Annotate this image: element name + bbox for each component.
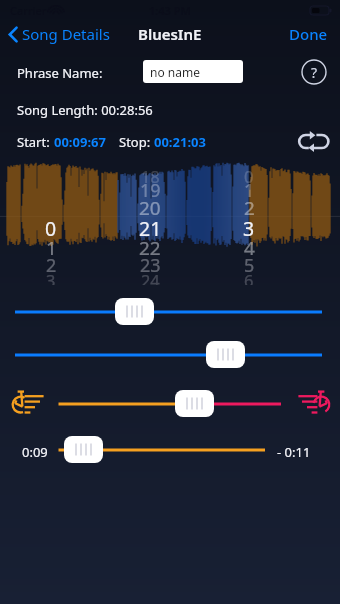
staticText: 6 <box>244 269 254 285</box>
staticText: 1 <box>244 178 255 202</box>
staticText: 19 <box>140 178 161 202</box>
staticText: 24 <box>141 269 160 285</box>
staticText: 21 <box>139 215 162 239</box>
staticText: 0:09 <box>22 443 48 461</box>
staticText: 0 <box>45 215 57 239</box>
staticText: 3 <box>243 215 255 239</box>
staticText: 23 <box>140 253 161 277</box>
staticText: 4 <box>47 282 56 285</box>
staticText: 5 <box>244 253 255 277</box>
staticText: ? <box>311 63 318 82</box>
staticText: 25 <box>142 282 159 285</box>
staticText: 22 <box>139 235 161 259</box>
button[interactable]: Loop <box>298 130 330 154</box>
button[interactable]: Faster <box>296 388 332 418</box>
staticText: 4 <box>244 235 255 259</box>
staticText: 3 <box>46 269 56 285</box>
staticText: 2 <box>244 195 255 219</box>
button[interactable]: Done <box>289 24 340 44</box>
staticText: Song Details <box>22 24 110 44</box>
staticText: 2 <box>46 253 57 277</box>
staticText: 00:21:03 <box>154 133 206 151</box>
button[interactable]: Song Details <box>0 24 110 44</box>
button[interactable]: Help <box>301 59 327 85</box>
staticText: 1 <box>46 235 57 259</box>
staticText: 0 <box>244 165 254 187</box>
staticText: no name <box>150 64 200 80</box>
button[interactable]: Slider thumb <box>64 436 103 463</box>
staticText: Phrase Name: <box>17 64 103 82</box>
staticText: 20 <box>139 195 161 219</box>
button[interactable]: no name <box>143 60 243 83</box>
staticText: - 0:11 <box>277 443 311 461</box>
staticText: Song Length: 00:28:56 <box>17 101 153 119</box>
staticText: 7 <box>245 282 254 285</box>
button[interactable]: Slower <box>10 388 46 418</box>
button[interactable]: Slider thumb <box>115 298 154 325</box>
staticText: Stop: <box>119 133 154 151</box>
button[interactable]: Slider thumb <box>175 390 214 417</box>
staticText: BluesInE <box>138 24 202 44</box>
staticText: 18 <box>141 165 160 187</box>
staticText: 00:09:67 <box>54 133 106 151</box>
staticText: Start: <box>17 133 54 151</box>
button[interactable]: Slider thumb <box>206 341 245 368</box>
